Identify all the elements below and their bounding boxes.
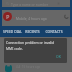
staticText: MMI code.	[6, 46, 23, 51]
button[interactable]: CONTACTS	[43, 26, 64, 37]
staticText: CONTACTS	[45, 29, 63, 34]
staticText: P	[6, 13, 10, 21]
staticText: Mobile, 4 hours ago	[16, 16, 47, 20]
button[interactable]: RECENTS	[22, 26, 43, 37]
button[interactable]: SPEED DIAL	[2, 26, 22, 37]
button[interactable]: Dialpad	[5, 65, 12, 72]
staticText: Connection problem or invalid	[6, 40, 55, 45]
staticText: Type a name or number	[11, 2, 49, 6]
staticText: SPEED DIAL	[3, 29, 22, 34]
button[interactable]: P	[2, 10, 70, 26]
staticText: 4:4 15 hours ago	[16, 65, 41, 69]
staticText: RECENTS	[25, 29, 40, 34]
button[interactable]: Call	[63, 13, 69, 19]
button[interactable]: Type a name or number	[2, 0, 70, 7]
button[interactable]: OK	[56, 54, 61, 59]
staticText: OK	[56, 54, 61, 59]
